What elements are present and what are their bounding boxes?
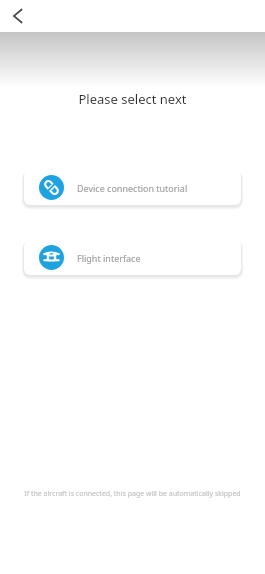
staticText: Flight interface [77,252,141,264]
staticText: If the aircraft is connected, this page … [6,489,259,499]
button[interactable]: Flight interface [24,240,241,275]
staticText: Device connection tutorial [77,182,188,194]
button[interactable]: Back [0,0,32,32]
staticText: Please select next [0,90,265,108]
button[interactable]: Device connection tutorial [24,170,241,205]
